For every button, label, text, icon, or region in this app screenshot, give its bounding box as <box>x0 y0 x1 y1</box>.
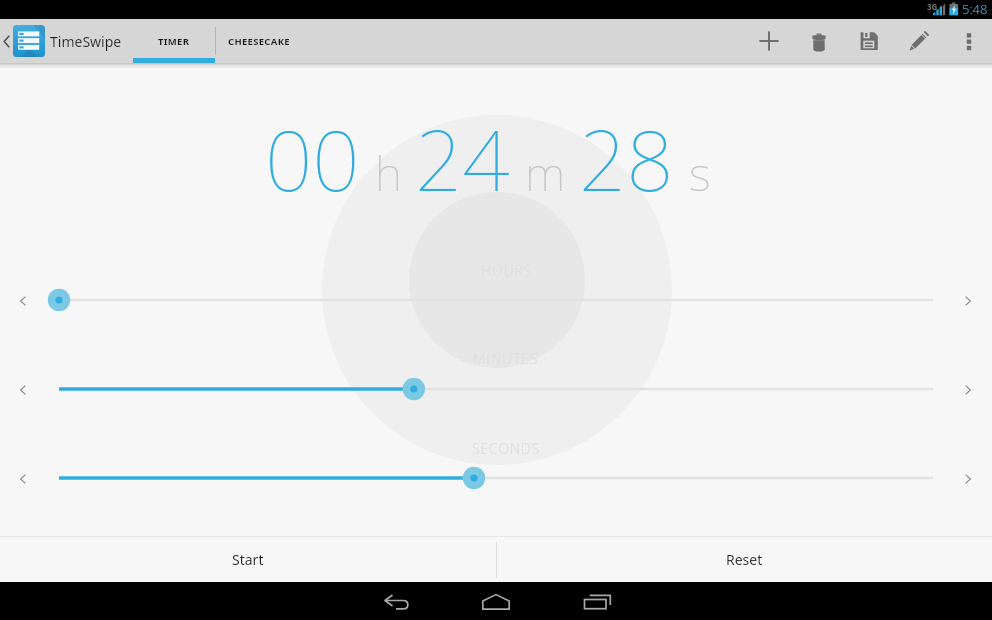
button[interactable]: Edit <box>894 19 944 63</box>
button[interactable]: Save <box>844 19 894 63</box>
button[interactable]: CHEESECAKE <box>216 19 301 63</box>
staticText: TIMER <box>158 35 190 48</box>
button[interactable]: Add <box>744 19 794 63</box>
button[interactable]: Back <box>372 582 414 620</box>
staticText: s <box>689 141 711 205</box>
button[interactable]: Decrease SECONDS <box>9 465 37 493</box>
button[interactable]: Recents <box>578 582 620 620</box>
staticText: 00 <box>265 102 360 215</box>
button[interactable]: More options <box>944 19 992 63</box>
button[interactable]: Reset <box>496 537 992 582</box>
button[interactable]: Decrease MINUTES <box>9 376 37 404</box>
button[interactable]: Delete <box>794 19 844 63</box>
button[interactable]: Increase MINUTES <box>954 376 982 404</box>
staticText: MINUTES <box>473 349 539 368</box>
staticText: m <box>525 141 566 205</box>
button[interactable]: Decrease HOURS <box>9 287 37 315</box>
button[interactable]: Home <box>475 582 517 620</box>
staticText: 5:48 <box>962 0 988 18</box>
button[interactable]: TIMER <box>133 19 215 63</box>
staticText: TimeSwipe <box>50 32 122 51</box>
staticText: 3G <box>927 1 938 12</box>
staticText: 24 <box>415 102 510 215</box>
staticText: SECONDS <box>472 439 540 458</box>
staticText: 28 <box>579 102 674 215</box>
staticText: h <box>375 141 402 205</box>
staticText: Reset <box>726 550 763 569</box>
staticText: CHEESECAKE <box>228 35 290 48</box>
button[interactable]: Increase SECONDS <box>954 465 982 493</box>
button[interactable]: Navigate up <box>0 19 13 63</box>
staticText: Start <box>232 550 264 569</box>
button[interactable]: Increase HOURS <box>954 287 982 315</box>
button[interactable]: Start <box>0 537 496 582</box>
